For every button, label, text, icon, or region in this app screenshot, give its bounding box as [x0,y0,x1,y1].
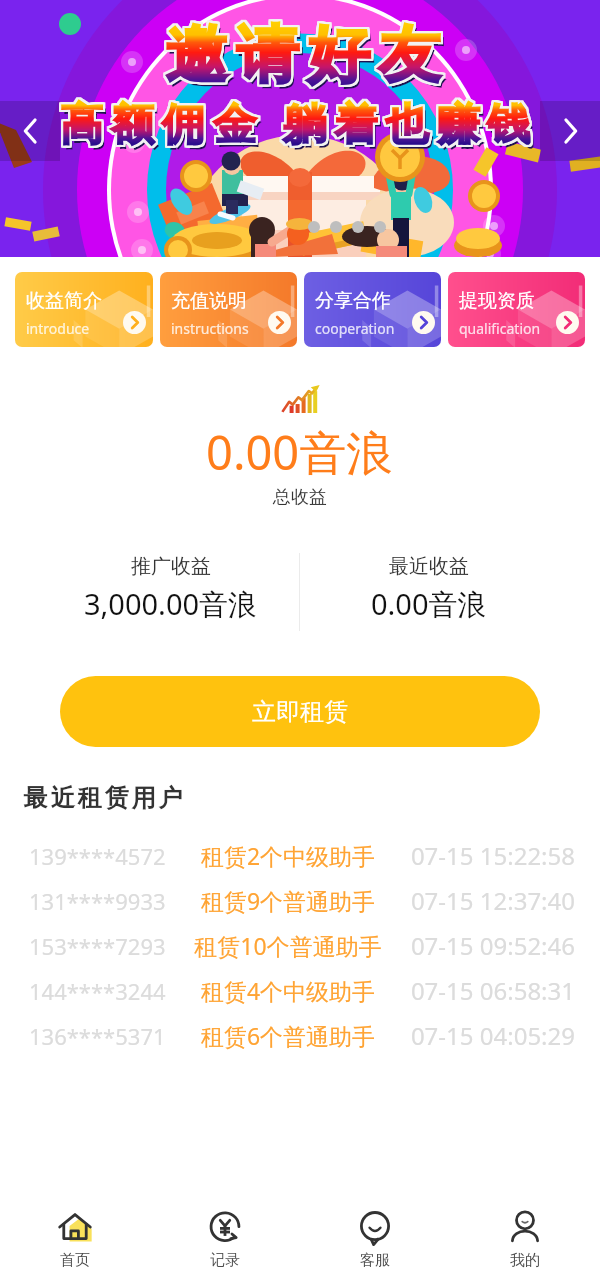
staticText: 高额佣金 躺着也赚钱 [59,92,538,151]
staticText: 邀请好友 [160,15,444,93]
staticText: 租赁2个中级助手 [170,840,406,871]
staticText: 153****7293 [29,931,166,961]
button[interactable]: 144****3244 [0,968,600,1013]
staticText: 高额佣金 躺着也赚钱 [58,91,537,150]
staticText: 最近收益 [389,554,469,579]
staticText: 0.00音浪 [206,420,394,484]
button[interactable]: 客服 [300,1196,450,1270]
staticText: 邀请好友 [159,15,443,93]
staticText: 邀请好友 [159,14,443,92]
staticText: 高额佣金 躺着也赚钱 [59,94,538,153]
staticText: 高额佣金 躺着也赚钱 [63,97,542,156]
staticText: qualification [459,319,541,338]
staticText: 高额佣金 躺着也赚钱 [61,95,540,154]
button[interactable]: 153****7293 [0,923,600,968]
staticText: 高额佣金 躺着也赚钱 [58,92,537,151]
staticText: 邀请好友 [160,17,444,95]
staticText: 131****9933 [29,886,166,916]
staticText: 高额佣金 躺着也赚钱 [58,94,537,153]
staticText: 07-15 06:58:31 [410,974,575,1007]
staticText: 高额佣金 躺着也赚钱 [60,95,539,154]
button[interactable]: 136****5371 [0,1013,600,1058]
staticText: 高额佣金 躺着也赚钱 [60,91,539,150]
button[interactable]: 记录 [150,1196,300,1270]
staticText: 分享合作 [315,289,391,313]
staticText: 高额佣金 躺着也赚钱 [61,91,540,150]
staticText: 高额佣金 躺着也赚钱 [61,94,540,153]
staticText: 3,000.00音浪 [84,584,258,624]
staticText: 高额佣金 躺着也赚钱 [62,94,541,153]
staticText: 07-15 04:05:29 [410,1019,575,1052]
staticText: 0.00音浪 [371,584,487,624]
staticText: 租赁6个普通助手 [170,1020,406,1051]
staticText: 高额佣金 躺着也赚钱 [60,93,539,152]
staticText: 推广收益 [131,554,211,579]
staticText: cooperation [315,319,395,338]
staticText: 总收益 [273,486,327,509]
staticText: 租赁9个普通助手 [170,885,406,916]
staticText: 07-15 12:37:40 [410,884,575,917]
button[interactable]: Previous banner [0,101,60,161]
button[interactable]: 首页 [0,1196,150,1270]
staticText: 记录 [210,1251,240,1270]
staticText: 邀请好友 [160,18,444,96]
staticText: 07-15 09:52:46 [410,929,575,962]
staticText: 139****4572 [29,841,166,871]
staticText: 我的 [510,1251,540,1270]
staticText: 邀请好友 [160,14,444,92]
staticText: 邀请好友 [162,15,446,93]
staticText: 首页 [60,1251,90,1270]
button[interactable]: 分享合作 [304,272,441,347]
staticText: 高额佣金 躺着也赚钱 [59,91,538,150]
staticText: 邀请好友 [163,14,447,92]
button[interactable]: 充值说明 [160,272,297,347]
staticText: 客服 [360,1251,390,1270]
button[interactable]: 131****9933 [0,878,600,923]
button[interactable]: 139****4572 [0,833,600,878]
staticText: 充值说明 [171,289,247,313]
staticText: 邀请好友 [163,16,447,94]
button[interactable]: 提现资质 [448,272,585,347]
staticText: 邀请好友 [159,16,443,94]
staticText: 邀请好友 [164,20,448,98]
button[interactable]: 我的 [450,1196,600,1270]
staticText: 租赁4个中级助手 [170,975,406,1006]
staticText: introduce [26,319,90,338]
staticText: 邀请好友 [159,17,443,95]
staticText: 高额佣金 躺着也赚钱 [62,95,541,154]
staticText: 高额佣金 躺着也赚钱 [58,95,537,154]
button[interactable]: 收益简介 [15,272,153,347]
staticText: 邀请好友 [163,15,447,93]
staticText: 高额佣金 躺着也赚钱 [58,93,537,152]
staticText: 邀请好友 [161,16,445,94]
staticText: 邀请好友 [161,14,445,92]
staticText: 高额佣金 躺着也赚钱 [61,92,540,151]
button[interactable]: 立即租赁 [60,676,540,747]
staticText: 邀请好友 [161,18,445,96]
staticText: 收益简介 [26,289,102,313]
staticText: 邀请好友 [162,18,446,96]
staticText: 邀请好友 [163,17,447,95]
staticText: 高额佣金 躺着也赚钱 [62,91,541,150]
staticText: instructions [171,319,249,338]
staticText: 136****5371 [29,1021,166,1051]
staticText: 提现资质 [459,289,535,313]
staticText: 邀请好友 [159,18,443,96]
staticText: 邀请好友 [163,18,447,96]
button[interactable]: Next banner [540,101,600,161]
staticText: 07-15 15:22:58 [410,839,575,872]
staticText: 邀请好友 [162,17,446,95]
staticText: 高额佣金 躺着也赚钱 [62,92,541,151]
staticText: 租赁10个普通助手 [170,930,406,961]
staticText: 高额佣金 躺着也赚钱 [62,93,541,152]
staticText: 立即租赁 [252,697,348,727]
staticText: 最近租赁用户 [22,783,184,813]
staticText: 邀请好友 [162,14,446,92]
staticText: 144****3244 [29,976,166,1006]
staticText: 高额佣金 躺着也赚钱 [59,95,538,154]
